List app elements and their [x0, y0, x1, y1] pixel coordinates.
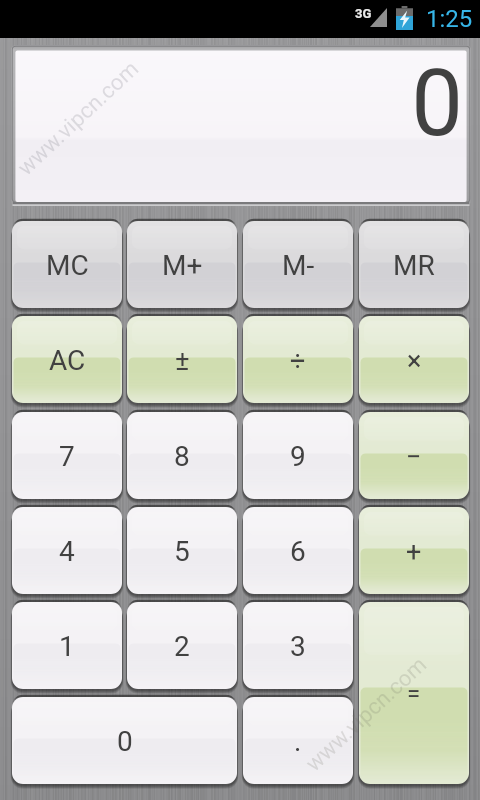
- staticText: 6: [290, 535, 306, 568]
- staticText: =: [407, 680, 421, 708]
- button[interactable]: −: [359, 412, 469, 501]
- button[interactable]: =: [359, 602, 469, 786]
- button[interactable]: MC: [12, 221, 122, 310]
- staticText: M+: [162, 249, 203, 282]
- staticText: 1:25: [426, 5, 473, 33]
- button[interactable]: 5: [127, 507, 237, 596]
- staticText: MC: [46, 249, 89, 282]
- staticText: ÷: [290, 345, 306, 377]
- staticText: 4: [59, 535, 75, 568]
- staticText: ±: [175, 345, 190, 377]
- button[interactable]: 8: [127, 412, 237, 501]
- button[interactable]: ±: [127, 316, 237, 405]
- button[interactable]: MR: [359, 221, 469, 310]
- staticText: www.vipcn.com: [301, 652, 432, 777]
- staticText: 8: [174, 440, 190, 473]
- staticText: ×: [407, 345, 422, 377]
- staticText: AC: [49, 344, 86, 377]
- button[interactable]: M-: [243, 221, 353, 310]
- button[interactable]: .: [243, 697, 353, 786]
- staticText: 3: [290, 630, 306, 663]
- button[interactable]: ÷: [243, 316, 353, 405]
- button[interactable]: 0: [12, 697, 237, 786]
- staticText: .: [294, 725, 302, 758]
- staticText: 5: [174, 535, 190, 568]
- button[interactable]: 4: [12, 507, 122, 596]
- other: Battery charging: [396, 5, 413, 30]
- staticText: 0: [117, 725, 133, 758]
- staticText: 2: [174, 630, 190, 663]
- button[interactable]: M+: [127, 221, 237, 310]
- staticText: 3G: [355, 6, 372, 21]
- staticText: 0: [411, 50, 463, 158]
- button[interactable]: 1: [12, 602, 122, 691]
- button[interactable]: 3: [243, 602, 353, 691]
- button[interactable]: +: [359, 507, 469, 596]
- staticText: 1: [59, 630, 75, 663]
- staticText: M-: [282, 249, 315, 282]
- button[interactable]: 6: [243, 507, 353, 596]
- button[interactable]: AC: [12, 316, 122, 405]
- button[interactable]: ×: [359, 316, 469, 405]
- button[interactable]: 2: [127, 602, 237, 691]
- staticText: 9: [290, 440, 306, 473]
- staticText: −: [406, 441, 422, 473]
- button[interactable]: 9: [243, 412, 353, 501]
- staticText: +: [406, 536, 422, 568]
- staticText: MR: [393, 249, 435, 282]
- staticText: 7: [59, 440, 75, 473]
- staticText: www.vipcn.com: [13, 56, 144, 181]
- button[interactable]: 7: [12, 412, 122, 501]
- other: Signal strength: [370, 8, 387, 27]
